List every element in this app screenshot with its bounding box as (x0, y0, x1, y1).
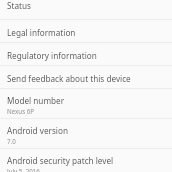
staticText: Android version (7, 125, 68, 136)
button[interactable]: Status (0, 0, 172, 19)
staticText: Nexus 6P (7, 107, 35, 115)
staticText: 7.0 (7, 137, 16, 145)
staticText: Regulatory information (7, 50, 97, 61)
button[interactable]: Android security patch level (0, 149, 172, 172)
staticText: Android security patch level (7, 155, 114, 166)
staticText: Model number (7, 95, 65, 106)
button[interactable]: Regulatory information (0, 43, 172, 65)
button[interactable]: Model number (0, 89, 172, 118)
button[interactable]: Send feedback about this device (0, 66, 172, 88)
button[interactable]: Android version (0, 119, 172, 148)
staticText: July 5, 2016 (7, 167, 40, 172)
staticText: Legal information (7, 27, 76, 38)
staticText: Status (7, 0, 31, 11)
button[interactable]: Legal information (0, 20, 172, 42)
staticText: Send feedback about this device (7, 73, 131, 84)
